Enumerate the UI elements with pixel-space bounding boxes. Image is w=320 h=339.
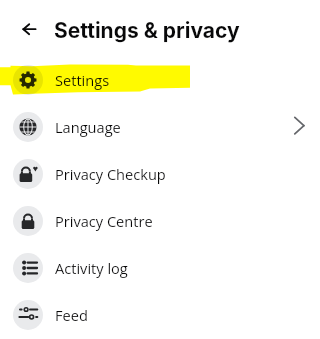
button[interactable]: Privacy Centre xyxy=(0,197,320,244)
staticText: Settings xyxy=(55,70,110,90)
button[interactable]: Activity log xyxy=(0,244,320,291)
button[interactable]: Settings xyxy=(0,56,320,103)
button[interactable]: Feed xyxy=(0,291,320,338)
button[interactable]: Privacy Checkup xyxy=(0,150,320,197)
staticText: Language xyxy=(55,117,121,137)
staticText: Settings & privacy xyxy=(54,18,240,43)
button[interactable]: Back xyxy=(13,17,44,41)
staticText: Activity log xyxy=(55,258,128,278)
staticText: Privacy Checkup xyxy=(55,164,166,184)
staticText: Privacy Centre xyxy=(55,211,153,231)
staticText: Feed xyxy=(55,305,88,325)
button[interactable]: Language xyxy=(0,103,320,150)
